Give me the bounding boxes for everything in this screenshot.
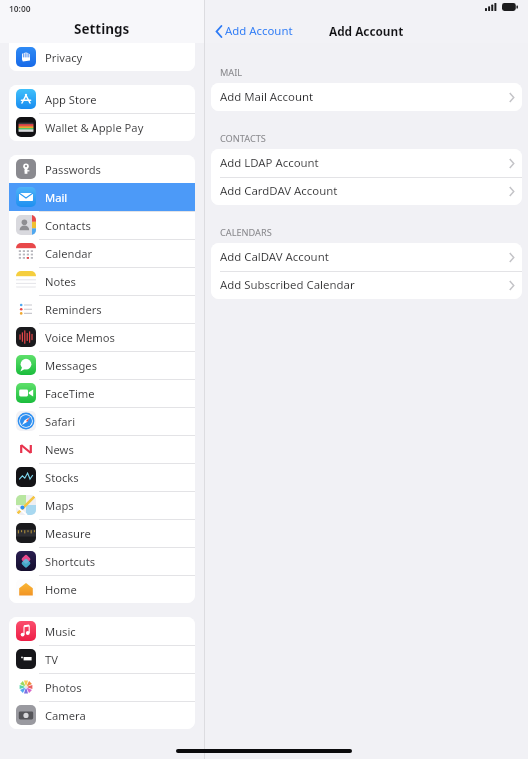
staticText: Add CardDAV Account — [220, 183, 338, 199]
staticText: News — [45, 442, 74, 457]
button[interactable]: Wallet & Apple Pay — [9, 113, 195, 141]
staticText: Measure — [45, 526, 91, 541]
staticText: Calendar — [45, 246, 93, 261]
button[interactable]: TV — [9, 645, 195, 673]
staticText: Camera — [45, 708, 86, 723]
button[interactable]: Voice Memos — [9, 323, 195, 351]
staticText: App Store — [45, 92, 97, 107]
button[interactable]: Stocks — [9, 463, 195, 491]
button[interactable]: Measure — [9, 519, 195, 547]
staticText: Passwords — [45, 162, 101, 177]
staticText: CALENDARS — [220, 226, 272, 239]
staticText: MAIL — [220, 66, 243, 79]
button[interactable]: Calendar — [9, 239, 195, 267]
staticText: Shortcuts — [45, 554, 96, 569]
button[interactable]: News — [9, 435, 195, 463]
staticText: Mail — [45, 190, 68, 205]
button[interactable]: Camera — [9, 701, 195, 729]
button[interactable]: Messages — [9, 351, 195, 379]
button[interactable]: Maps — [9, 491, 195, 519]
staticText: Wallet & Apple Pay — [45, 120, 144, 135]
button[interactable]: Photos — [9, 673, 195, 701]
button[interactable]: Passwords — [9, 155, 195, 183]
staticText: Settings — [74, 20, 130, 38]
staticText: Notes — [45, 274, 76, 289]
button[interactable]: Add Subscribed Calendar — [211, 271, 522, 299]
staticText: Voice Memos — [45, 330, 115, 345]
staticText: Messages — [45, 358, 97, 373]
staticText: Reminders — [45, 302, 102, 317]
button[interactable]: Safari — [9, 407, 195, 435]
staticText: Contacts — [45, 218, 91, 233]
staticText: Add Subscribed Calendar — [220, 277, 355, 293]
staticText: Add LDAP Account — [220, 155, 319, 171]
staticText: FaceTime — [45, 386, 95, 401]
staticText: Stocks — [45, 470, 79, 485]
button[interactable]: Home — [9, 575, 195, 603]
staticText: Add Account — [225, 23, 293, 39]
staticText: Add Mail Account — [220, 89, 314, 105]
button[interactable]: FaceTime — [9, 379, 195, 407]
button[interactable]: Notes — [9, 267, 195, 295]
staticText: 10:00 — [9, 3, 31, 14]
button[interactable]: Shortcuts — [9, 547, 195, 575]
staticText: Privacy — [45, 50, 83, 65]
button[interactable]: Add CardDAV Account — [211, 177, 522, 205]
button[interactable]: Add Account — [216, 23, 293, 39]
staticText: Safari — [45, 414, 76, 429]
staticText: Maps — [45, 498, 74, 513]
staticText: Add CalDAV Account — [220, 249, 329, 265]
button[interactable]: Add CalDAV Account — [211, 243, 522, 271]
staticText: TV — [45, 652, 58, 667]
button[interactable]: Add Mail Account — [211, 83, 522, 111]
button[interactable]: Music — [9, 617, 195, 645]
button[interactable]: Mail — [9, 183, 195, 211]
button[interactable]: Contacts — [9, 211, 195, 239]
staticText: Photos — [45, 680, 82, 695]
staticText: Add Account — [329, 23, 404, 39]
button[interactable]: Privacy — [9, 43, 195, 71]
button[interactable]: Add LDAP Account — [211, 149, 522, 177]
staticText: Music — [45, 624, 76, 639]
button[interactable]: Reminders — [9, 295, 195, 323]
staticText: CONTACTS — [220, 132, 266, 145]
staticText: Home — [45, 582, 77, 597]
button[interactable]: App Store — [9, 85, 195, 113]
